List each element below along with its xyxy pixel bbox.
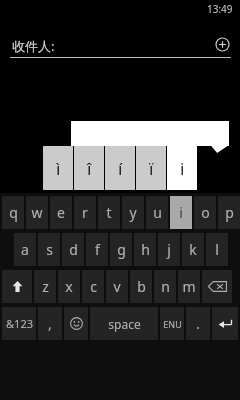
button[interactable]: , [38, 307, 62, 340]
staticText: ENU [163, 318, 182, 330]
staticText: . [196, 314, 200, 333]
button[interactable]: b [130, 270, 152, 303]
button[interactable]: x [58, 270, 80, 303]
button[interactable]: y [122, 196, 144, 229]
staticText: space [108, 316, 141, 332]
staticText: g [117, 240, 126, 259]
button[interactable]: o [194, 196, 216, 229]
button[interactable]: ENU [160, 307, 184, 340]
button[interactable]: h [134, 233, 156, 266]
button[interactable]: Backspace [202, 270, 232, 303]
button[interactable]: &123 [2, 307, 36, 340]
button[interactable]: f [86, 233, 108, 266]
staticText: &123 [6, 316, 33, 331]
button[interactable]: ì [43, 146, 73, 190]
staticText: 13:49 [207, 2, 233, 16]
staticText: ï [149, 157, 154, 180]
staticText: r [82, 203, 88, 222]
button[interactable]: Add recipient [213, 35, 232, 54]
staticText: s [46, 240, 53, 259]
staticText: f [95, 240, 100, 259]
button[interactable]: i [167, 146, 197, 190]
staticText: o [201, 203, 210, 222]
button[interactable]: k [182, 233, 204, 266]
staticText: q [9, 203, 18, 222]
staticText: î [87, 157, 92, 180]
button[interactable]: ï [136, 146, 166, 190]
button[interactable]: d [62, 233, 84, 266]
button[interactable]: i [170, 196, 192, 229]
button[interactable]: s [38, 233, 60, 266]
staticText: l [215, 240, 219, 259]
staticText: a [21, 240, 29, 259]
staticText: , [48, 314, 52, 333]
button[interactable]: t [98, 196, 120, 229]
button[interactable]: w [26, 196, 48, 229]
staticText: 收件人: [12, 37, 55, 55]
staticText: i [180, 157, 185, 180]
button[interactable]: space [90, 307, 158, 340]
staticText: b [137, 277, 146, 296]
staticText: h [141, 240, 150, 259]
staticText: ì [56, 157, 61, 180]
button[interactable]: q [2, 196, 24, 229]
button[interactable]: í [105, 146, 135, 190]
staticText: m [182, 277, 196, 296]
button[interactable]: l [206, 233, 228, 266]
button[interactable]: z [34, 270, 56, 303]
staticText: d [69, 240, 78, 259]
staticText: n [161, 277, 170, 296]
button[interactable]: m [178, 270, 200, 303]
staticText: z [42, 277, 49, 296]
staticText: y [129, 203, 137, 222]
button[interactable]: Shift [2, 270, 32, 303]
staticText: k [189, 240, 197, 259]
button[interactable]: Emoji [64, 307, 88, 340]
staticText: i [179, 203, 183, 222]
staticText: í [118, 157, 123, 180]
button[interactable]: e [50, 196, 72, 229]
button[interactable]: a [14, 233, 36, 266]
button[interactable]: î [74, 146, 104, 190]
button[interactable]: c [82, 270, 104, 303]
button[interactable]: Enter [212, 307, 238, 340]
button[interactable]: r [74, 196, 96, 229]
staticText: x [65, 277, 73, 296]
staticText: v [113, 277, 121, 296]
button[interactable]: n [154, 270, 176, 303]
staticText: w [31, 203, 43, 222]
staticText: t [106, 203, 112, 222]
button[interactable]: p [218, 196, 240, 229]
staticText: e [57, 203, 65, 222]
staticText: p [225, 203, 234, 222]
staticText: c [90, 277, 97, 296]
button[interactable]: . [186, 307, 210, 340]
button[interactable]: v [106, 270, 128, 303]
staticText: j [167, 240, 171, 259]
button[interactable]: g [110, 233, 132, 266]
staticText: u [153, 203, 162, 222]
button[interactable]: u [146, 196, 168, 229]
button[interactable]: j [158, 233, 180, 266]
